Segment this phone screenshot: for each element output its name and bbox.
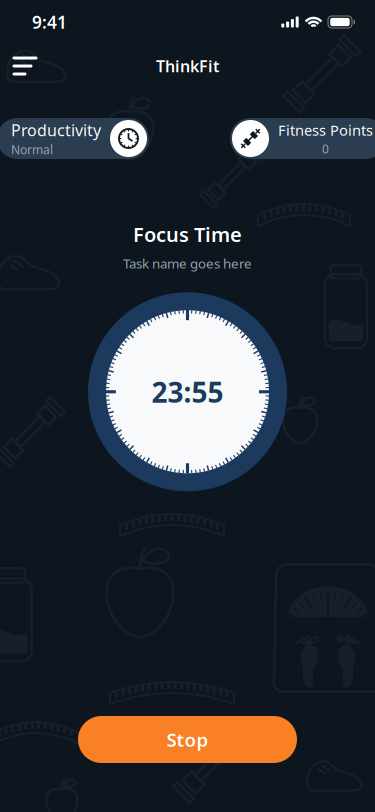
button[interactable]: Fitness Points: [230, 118, 375, 159]
staticText: 9:41: [32, 10, 67, 33]
staticText: Focus Time: [133, 221, 242, 248]
staticText: Productivity: [11, 119, 101, 141]
staticText: Fitness Points: [278, 120, 373, 140]
staticText: 0: [322, 141, 329, 157]
staticText: Task name goes here: [123, 255, 252, 272]
staticText: 23:55: [151, 373, 223, 410]
staticText: Stop: [166, 727, 208, 752]
button[interactable]: Stop: [78, 716, 297, 763]
button[interactable]: Productivity: [0, 118, 149, 159]
staticText: ThinkFit: [156, 55, 219, 77]
staticText: Normal: [11, 142, 53, 158]
button[interactable]: Menu: [1, 44, 49, 88]
